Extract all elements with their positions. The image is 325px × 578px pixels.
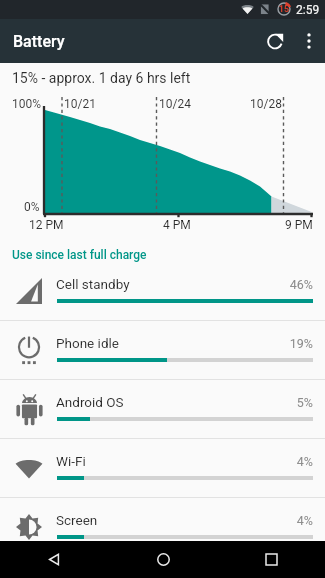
button[interactable]: Screen — [0, 498, 325, 556]
button[interactable]: Recent apps — [217, 541, 325, 578]
staticText: 15% - approx. 1 day 6 hrs left — [12, 70, 191, 86]
staticText: 9 PM — [285, 218, 313, 232]
staticText: 12 PM — [29, 218, 64, 232]
button[interactable]: Use since last full charge — [0, 235, 325, 262]
staticText: Use since last full charge — [12, 248, 147, 262]
staticText: Battery — [13, 32, 65, 51]
button[interactable]: Cell standby — [0, 262, 325, 320]
button[interactable]: Wi-Fi — [0, 439, 325, 497]
staticText: 4% — [233, 454, 313, 469]
staticText: 10/28 — [250, 97, 282, 111]
staticText: 10/21 — [64, 97, 96, 111]
staticText: 2:59 — [296, 3, 320, 17]
staticText: 46% — [233, 277, 313, 292]
staticText: Cell standby — [56, 276, 130, 292]
staticText: 4 PM — [163, 218, 191, 232]
staticText: 100% — [12, 97, 42, 111]
button[interactable]: Back — [0, 541, 109, 578]
staticText: Screen — [56, 512, 98, 528]
staticText: 19% — [233, 336, 313, 351]
staticText: 15 — [277, 4, 291, 15]
button[interactable]: Android OS — [0, 380, 325, 438]
staticText: Wi-Fi — [56, 453, 86, 469]
staticText: 10/24 — [159, 97, 191, 111]
staticText: 4% — [233, 513, 313, 528]
staticText: Phone idle — [56, 335, 119, 351]
button[interactable]: Home — [109, 541, 217, 578]
button[interactable]: More options — [293, 19, 325, 63]
staticText: 0% — [24, 200, 40, 214]
button[interactable]: Refresh — [255, 19, 295, 63]
button[interactable]: Phone idle — [0, 321, 325, 379]
staticText: Android OS — [56, 394, 124, 410]
staticText: 5% — [233, 395, 313, 410]
